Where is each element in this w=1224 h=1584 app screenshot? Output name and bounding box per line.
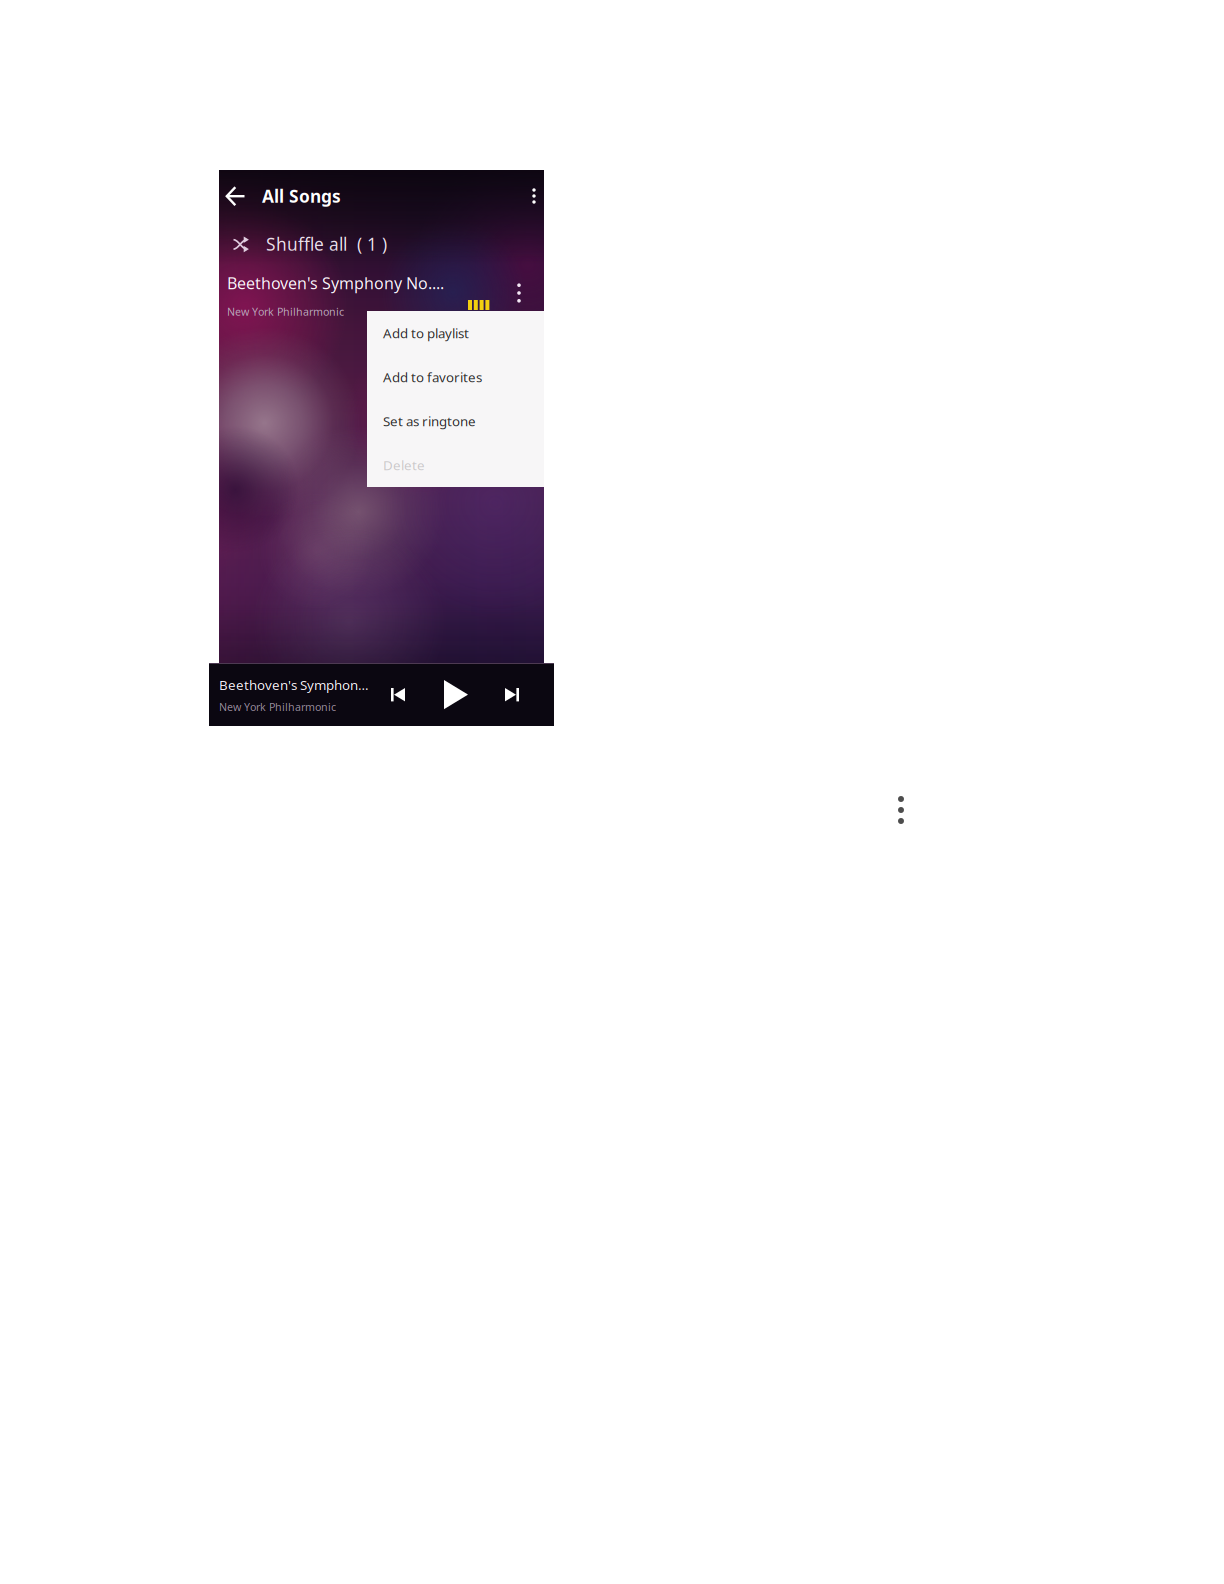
button[interactable]: Previous track	[381, 664, 415, 726]
button[interactable]: Add to favorites	[367, 355, 544, 399]
staticText: Beethoven's Symphony No....	[227, 272, 444, 293]
button[interactable]: Play	[443, 664, 469, 726]
button[interactable]: More	[890, 790, 912, 830]
staticText: New York Philharmonic	[227, 304, 344, 319]
button[interactable]: Shuffle all ( 1 )	[209, 222, 554, 266]
button[interactable]: Delete	[367, 443, 544, 487]
button[interactable]: More options	[514, 170, 554, 222]
staticText: New York Philharmonic	[219, 700, 336, 714]
staticText: Delete	[383, 456, 425, 474]
button[interactable]: Next track	[495, 664, 529, 726]
staticText: Add to playlist	[383, 324, 469, 342]
button[interactable]: Add to playlist	[367, 311, 544, 355]
button[interactable]: Song options	[500, 266, 538, 320]
button[interactable]: Set as ringtone	[367, 399, 544, 443]
staticText: All Songs	[262, 184, 341, 207]
button[interactable]: Back	[209, 170, 262, 222]
staticText: Beethoven's Symphony...	[219, 676, 373, 694]
staticText: Add to favorites	[383, 368, 482, 386]
staticText: Set as ringtone	[383, 412, 476, 430]
staticText: Shuffle all ( 1 )	[266, 232, 387, 255]
